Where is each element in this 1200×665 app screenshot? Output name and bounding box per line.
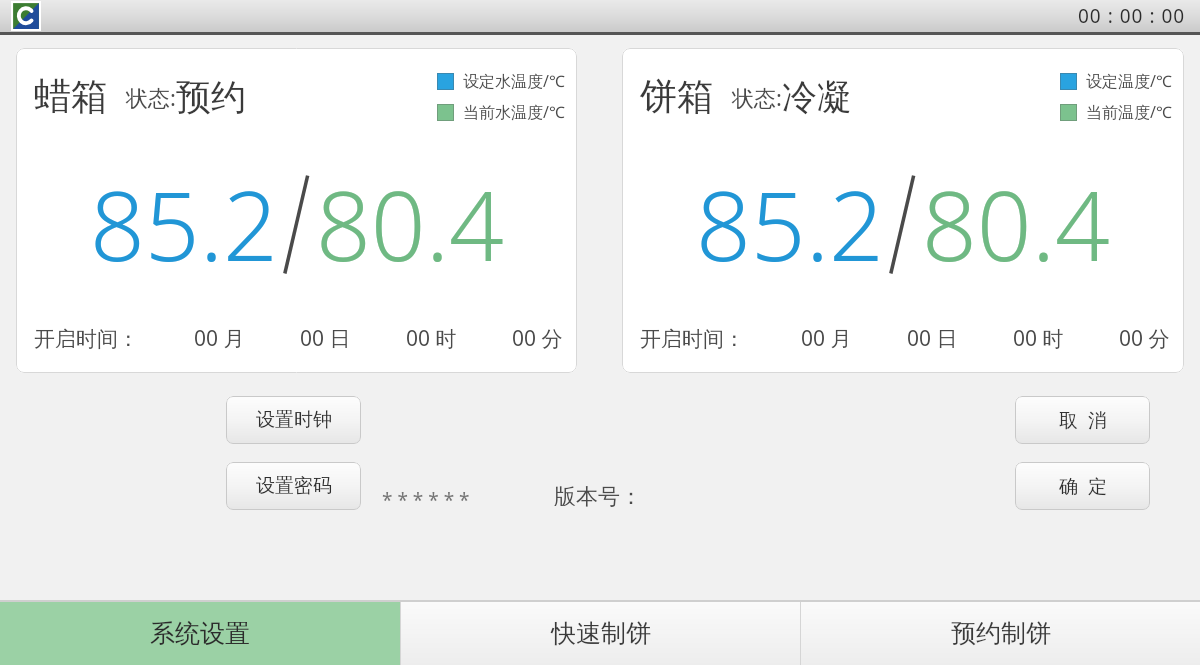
staticText: 当前温度/℃: [1086, 101, 1172, 123]
staticText: 蜡箱: [34, 73, 108, 120]
staticText: 开启时间：: [640, 326, 745, 352]
staticText: 快速制饼: [551, 618, 651, 649]
staticText: 00 : 00 : 00: [1078, 3, 1186, 29]
staticText: 当前水温度/℃: [463, 101, 565, 123]
staticText: 状态:: [126, 82, 176, 112]
staticText: 00 分: [512, 324, 563, 353]
staticText: 设置密码: [256, 474, 332, 498]
staticText: 85.2: [696, 158, 884, 289]
staticText: 设置时钟: [256, 408, 332, 432]
staticText: 状态:: [732, 82, 782, 112]
staticText: 00 月: [801, 324, 852, 353]
staticText: 设定水温度/℃: [463, 70, 565, 92]
staticText: 冷凝: [782, 75, 852, 119]
staticText: 00 分: [1119, 324, 1170, 353]
button[interactable]: 取 消: [1015, 396, 1150, 444]
staticText: 00 日: [300, 324, 351, 353]
button[interactable]: 预约制饼: [801, 602, 1200, 665]
button[interactable]: 设置密码: [226, 462, 361, 510]
button[interactable]: 确 定: [1015, 462, 1150, 510]
staticText: 85.2: [90, 158, 278, 289]
staticText: 确 定: [1059, 473, 1107, 499]
staticText: 开启时间：: [34, 326, 139, 352]
staticText: 预约制饼: [951, 618, 1051, 649]
button[interactable]: 快速制饼: [401, 602, 800, 665]
staticText: * * * * * *: [382, 487, 470, 513]
staticText: 00 日: [907, 324, 958, 353]
staticText: 00 月: [194, 324, 245, 353]
button[interactable]: 蜡箱: [16, 48, 577, 373]
button[interactable]: 设置时钟: [226, 396, 361, 444]
staticText: 取 消: [1059, 407, 1107, 433]
button[interactable]: Logo: [11, 1, 41, 31]
staticText: 饼箱: [640, 73, 714, 120]
button[interactable]: 系统设置: [0, 602, 400, 665]
staticText: 版本号：: [554, 483, 642, 511]
staticText: 80.4: [316, 158, 504, 289]
button[interactable]: 饼箱: [622, 48, 1184, 373]
staticText: 00 时: [406, 324, 457, 353]
staticText: 80.4: [922, 158, 1110, 289]
staticText: 预约: [176, 75, 246, 119]
staticText: 设定温度/℃: [1086, 70, 1172, 92]
staticText: 系统设置: [150, 618, 250, 649]
staticText: 00 时: [1013, 324, 1064, 353]
